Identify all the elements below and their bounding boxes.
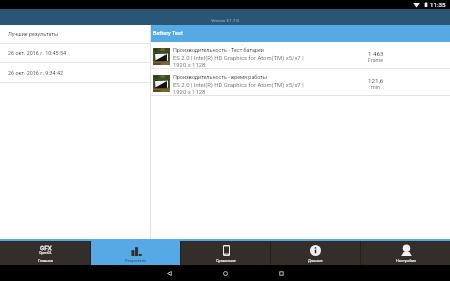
staticText: GFX bbox=[40, 244, 52, 251]
staticText: Сравнение bbox=[216, 258, 236, 263]
staticText: ES 2.0 | Intel(R) HD Graphics for Atom(T… bbox=[173, 82, 304, 89]
button[interactable]: Производительность - время работы bbox=[151, 69, 450, 96]
staticText: 11:35 bbox=[430, 1, 446, 8]
button[interactable]: Результаты bbox=[91, 241, 180, 265]
button[interactable]: Производительность - Тест батареи bbox=[151, 42, 450, 69]
button[interactable]: Данные bbox=[271, 241, 360, 265]
staticText: Frame bbox=[368, 57, 384, 63]
button[interactable]: Лучшие результаты bbox=[0, 25, 150, 44]
button[interactable]: GFX bbox=[0, 241, 90, 265]
button[interactable]: Back bbox=[141, 265, 197, 281]
staticText: min bbox=[371, 84, 381, 90]
staticText: Лучшие результаты bbox=[8, 31, 59, 37]
staticText: 1920 x 1128 bbox=[173, 89, 206, 95]
staticText: Результаты bbox=[125, 258, 147, 263]
staticText: 26 окт. 2016 г. 9:34:42 bbox=[8, 70, 63, 76]
staticText: 1 463 bbox=[368, 50, 384, 57]
button[interactable]: 26 окт. 2016 г. 9:34:42 bbox=[0, 63, 150, 83]
button[interactable]: Recents bbox=[253, 265, 309, 281]
staticText: Battery Test bbox=[153, 30, 183, 37]
staticText: Version 3.1.7.0 bbox=[211, 18, 239, 23]
staticText: Настройки bbox=[396, 258, 416, 263]
staticText: OpenGL bbox=[39, 251, 52, 255]
button[interactable]: Home bbox=[197, 265, 253, 281]
staticText: 26 окт. 2016 г. 10:45:54 bbox=[8, 50, 67, 56]
staticText: Производительность - Тест батареи bbox=[173, 47, 264, 53]
button[interactable]: Настройки bbox=[361, 241, 450, 265]
staticText: 121,6 bbox=[368, 77, 384, 84]
button[interactable]: Сравнение bbox=[181, 241, 270, 265]
staticText: ES 2.0 | Intel(R) HD Graphics for Atom(T… bbox=[173, 55, 304, 62]
staticText: Данные bbox=[308, 258, 323, 263]
staticText: Главная bbox=[38, 258, 53, 263]
button[interactable]: 26 окт. 2016 г. 10:45:54 bbox=[0, 44, 150, 63]
staticText: Производительность - время работы bbox=[173, 74, 268, 80]
staticText: 1920 x 1128 bbox=[173, 62, 206, 68]
